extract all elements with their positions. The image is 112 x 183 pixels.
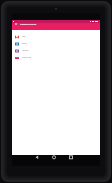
staticText: Other accounts — [22, 57, 31, 59]
button[interactable]: Home — [51, 155, 57, 161]
button[interactable]: Yahoo Mail — [12, 47, 100, 54]
button[interactable]: Gmail — [12, 33, 100, 40]
staticText: Yahoo Mail — [22, 50, 29, 52]
staticText: Configure account — [20, 23, 37, 26]
staticText: Gmail — [22, 36, 26, 38]
button[interactable]: Recent apps — [68, 155, 74, 161]
staticText: Outlook — [22, 43, 27, 45]
button[interactable]: Other accounts — [12, 54, 100, 61]
button[interactable]: Back — [34, 155, 40, 161]
button[interactable]: Navigate up — [14, 22, 18, 26]
button[interactable]: Outlook — [12, 40, 100, 47]
